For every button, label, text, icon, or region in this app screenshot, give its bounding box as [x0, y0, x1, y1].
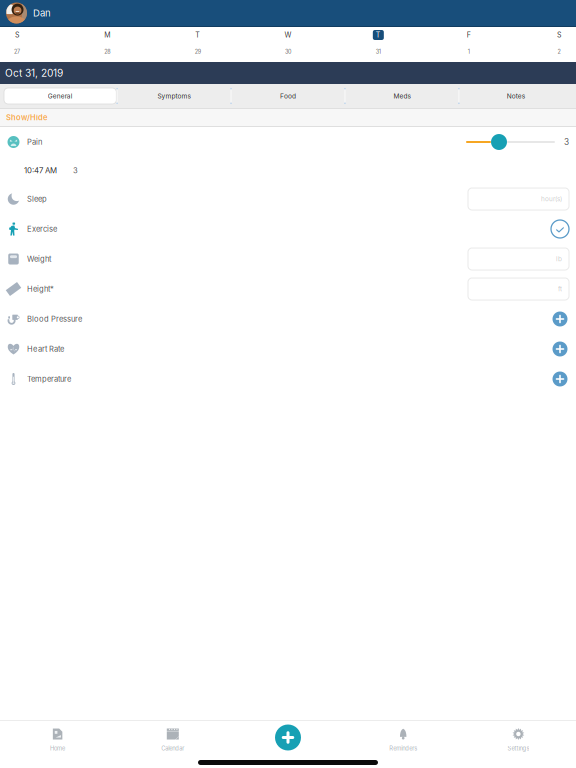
staticText: Reminders — [389, 745, 417, 752]
button[interactable]: Mark exercise done — [551, 216, 569, 242]
staticText: 2 — [557, 48, 560, 55]
staticText: ft — [558, 285, 562, 293]
button[interactable]: Meds — [346, 88, 458, 104]
button[interactable]: Add — [551, 336, 569, 362]
staticText: S — [15, 31, 19, 39]
staticText: lb — [556, 255, 562, 263]
staticText: Calendar — [161, 745, 184, 752]
button[interactable]: S — [0, 27, 34, 62]
button[interactable]: ft — [468, 278, 569, 300]
staticText: Pain — [27, 137, 42, 147]
staticText: Oct 31, 2019 — [5, 67, 63, 79]
staticText: W — [284, 31, 291, 39]
button[interactable]: Profile — [6, 2, 27, 23]
staticText: 3 — [564, 137, 569, 147]
button[interactable]: Show/Hide — [6, 110, 47, 125]
button[interactable]: F — [452, 27, 486, 62]
staticText: Exercise — [27, 224, 57, 234]
button[interactable]: Settings — [461, 721, 576, 768]
staticText: 30 — [285, 48, 291, 55]
staticText: Sleep — [27, 194, 47, 204]
staticText: Settings — [507, 745, 529, 752]
staticText: 28 — [104, 48, 110, 55]
button[interactable]: Food — [232, 88, 344, 104]
staticText: hour(s) — [541, 195, 562, 203]
staticText: Home — [50, 745, 65, 752]
staticText: Heart Rate — [27, 344, 64, 354]
staticText: 3 — [73, 166, 78, 175]
button[interactable]: Symptoms — [118, 88, 230, 104]
button[interactable]: T — [361, 27, 395, 62]
staticText: 10:47 AM — [24, 166, 57, 175]
button[interactable]: Notes — [460, 88, 572, 104]
staticText: Show/Hide — [6, 113, 47, 122]
button[interactable]: T — [181, 27, 215, 62]
button[interactable]: Calendar — [115, 721, 230, 768]
staticText: T — [376, 31, 381, 39]
staticText: T — [195, 31, 200, 39]
staticText: General — [48, 92, 73, 100]
staticText: Weight — [27, 254, 51, 264]
button[interactable]: M — [90, 27, 124, 62]
staticText: F — [467, 31, 471, 39]
staticText: Height* — [27, 284, 54, 294]
staticText: 27 — [14, 48, 20, 55]
button[interactable]: General — [4, 88, 116, 104]
staticText: Food — [280, 92, 296, 100]
button[interactable]: lb — [468, 248, 569, 270]
button[interactable]: New entry — [230, 717, 346, 768]
staticText: 31 — [376, 48, 381, 55]
button[interactable]: W — [271, 27, 305, 62]
button[interactable]: Add — [551, 366, 569, 392]
staticText: Dan — [33, 7, 51, 19]
button[interactable]: Add — [551, 306, 569, 332]
button[interactable]: Home — [0, 721, 115, 768]
button[interactable]: hour(s) — [468, 188, 569, 210]
staticText: Meds — [393, 92, 410, 100]
staticText: Temperature — [27, 374, 71, 384]
button[interactable]: S — [542, 27, 576, 62]
staticText: Blood Pressure — [27, 314, 82, 324]
button[interactable]: Reminders — [346, 721, 461, 768]
staticText: S — [557, 31, 561, 39]
staticText: 1 — [468, 48, 470, 55]
staticText: M — [104, 31, 110, 39]
staticText: Notes — [507, 92, 525, 100]
staticText: 29 — [195, 48, 201, 55]
staticText: Symptoms — [158, 92, 191, 100]
